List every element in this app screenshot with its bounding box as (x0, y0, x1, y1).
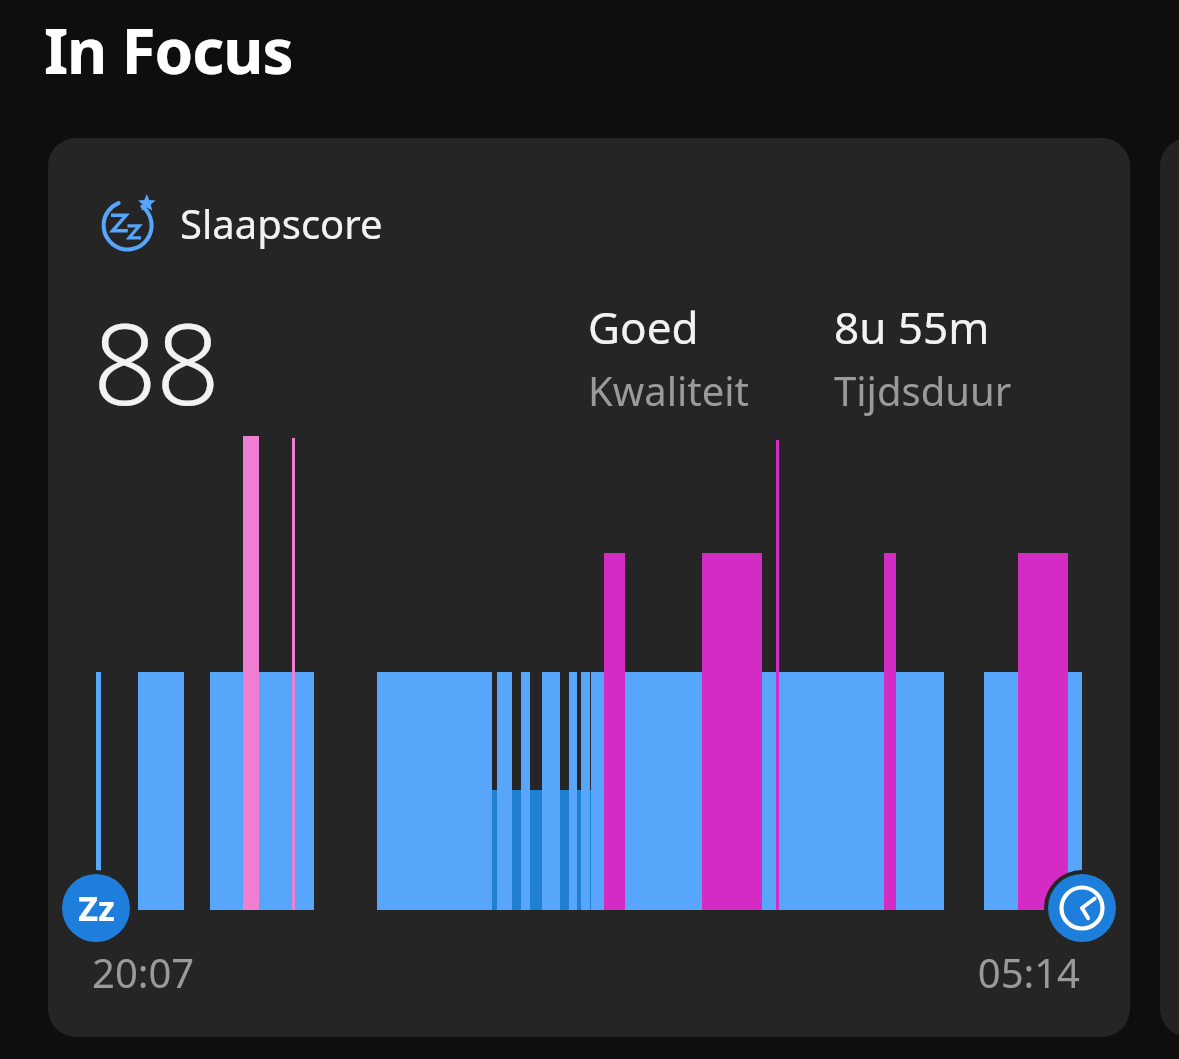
button[interactable]: Sleep start (58, 870, 134, 946)
staticText: 20:07 (92, 945, 195, 999)
staticText: 05:14 (880, 945, 1080, 999)
staticText: In Focus (44, 8, 293, 92)
staticText: Goed (588, 297, 699, 357)
staticText: Kwaliteit (588, 363, 750, 417)
button[interactable] (0, 0, 1179, 1059)
staticText: 88 (93, 285, 219, 438)
staticText: 8u 55m (834, 297, 990, 357)
staticText: Slaapscore (180, 196, 383, 250)
staticText: Zz (78, 885, 115, 931)
button[interactable]: Wake time (1044, 870, 1120, 946)
button[interactable] (48, 138, 1130, 1037)
staticText: Tijdsduur (834, 363, 1012, 417)
